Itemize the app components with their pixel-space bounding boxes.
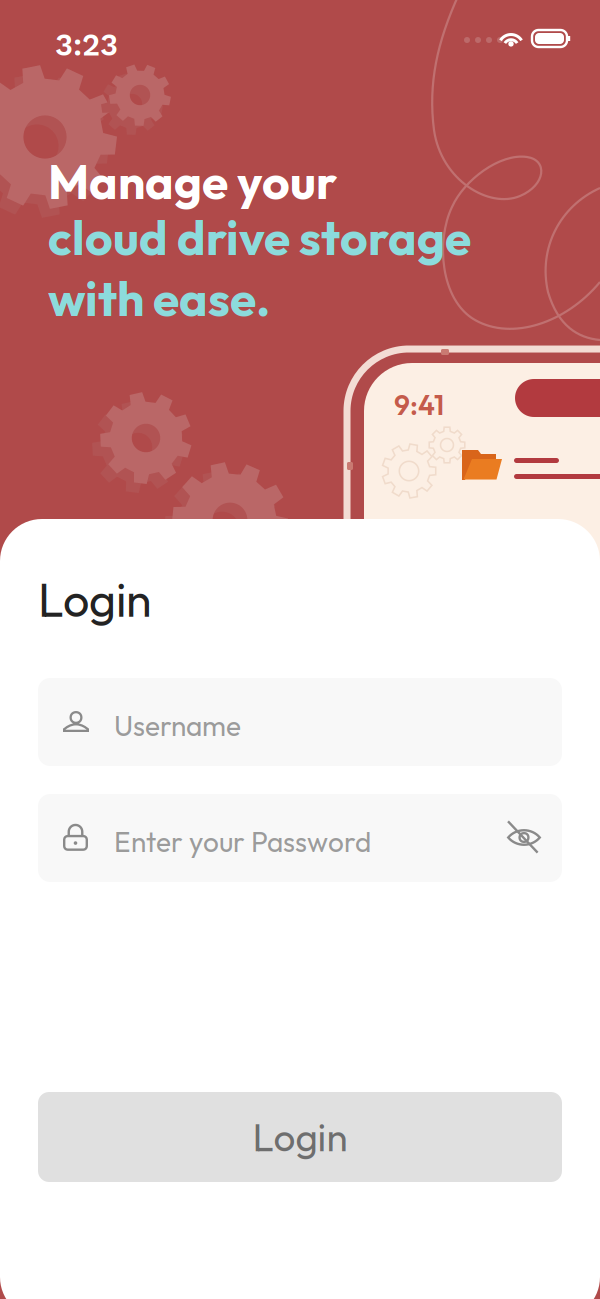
staticText: Username <box>114 708 241 743</box>
staticText: 3:23 <box>55 27 118 63</box>
staticText: with ease. <box>48 268 270 328</box>
staticText: Manage your <box>48 151 337 211</box>
staticText: Login <box>38 570 152 629</box>
staticText: 9:41 <box>394 387 444 422</box>
staticText: Login <box>252 1113 347 1161</box>
staticText: cloud drive storage <box>48 207 471 267</box>
staticText: Enter your Password <box>114 824 371 859</box>
button[interactable]: Login <box>38 1092 562 1182</box>
